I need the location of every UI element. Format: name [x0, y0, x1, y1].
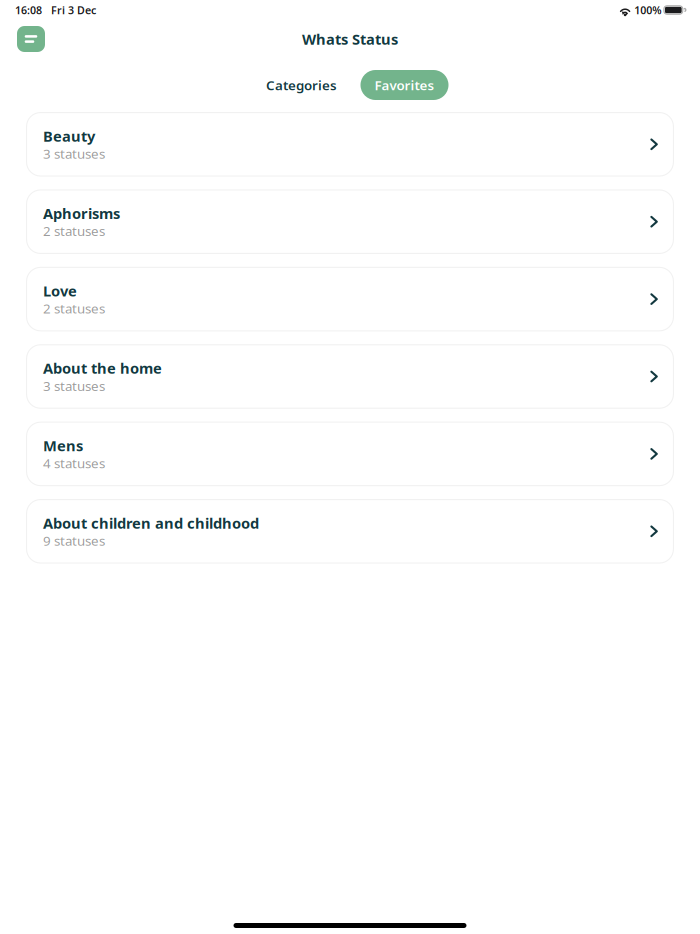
staticText: 4 statuses	[43, 454, 105, 472]
staticText: About children and childhood	[43, 513, 259, 533]
staticText: Whats Status	[302, 29, 398, 49]
staticText: 9 statuses	[43, 532, 105, 549]
staticText: Aphorisms	[43, 204, 120, 223]
staticText: Mens	[43, 436, 83, 455]
button[interactable]: Mens	[26, 422, 674, 486]
button[interactable]: Love	[26, 267, 674, 331]
staticText: 16:08	[15, 3, 42, 17]
staticText: Categories	[266, 76, 337, 94]
staticText: Love	[43, 281, 77, 300]
button[interactable]: Beauty	[26, 112, 674, 177]
staticText: Fri 3 Dec	[51, 3, 96, 17]
button[interactable]: About the home	[26, 344, 674, 409]
staticText: 2 statuses	[43, 222, 105, 240]
button[interactable]: Categories	[268, 70, 334, 100]
staticText: 3 statuses	[43, 377, 105, 395]
button[interactable]: Menu	[17, 26, 45, 52]
staticText: About the home	[43, 358, 162, 378]
staticText: 2 statuses	[43, 299, 105, 317]
staticText: 3 statuses	[43, 145, 105, 162]
staticText: Favorites	[374, 76, 434, 94]
staticText: 100%	[634, 3, 661, 17]
button[interactable]: Aphorisms	[26, 189, 674, 254]
staticText: Beauty	[43, 126, 95, 146]
button[interactable]: About children and childhood	[26, 499, 674, 564]
button[interactable]: Favorites	[360, 70, 448, 100]
